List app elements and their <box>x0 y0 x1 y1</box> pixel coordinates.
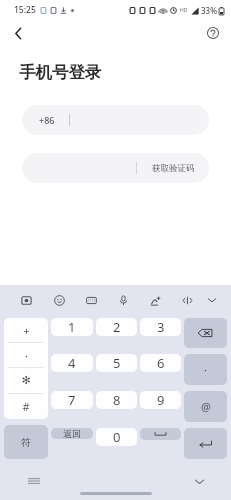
staticText: 2 <box>113 318 121 336</box>
staticText: 5 <box>113 354 121 372</box>
staticText: 8 <box>113 391 121 409</box>
button[interactable]: +86 <box>22 105 209 135</box>
button[interactable]: # <box>4 394 48 419</box>
button[interactable]: Handwriting <box>139 285 171 315</box>
button[interactable]: 6 <box>140 354 181 372</box>
button[interactable]: Hide keyboard <box>203 285 221 315</box>
staticText: # <box>22 399 30 414</box>
button[interactable]: 4 <box>51 354 93 372</box>
button[interactable]: Keyboard <box>75 285 107 315</box>
button[interactable]: ✻ <box>4 368 48 393</box>
staticText: 符 <box>21 436 31 449</box>
button[interactable]: 1 <box>51 318 93 336</box>
staticText: 3 <box>157 318 165 336</box>
button[interactable]: Input method <box>10 285 43 315</box>
staticText: +86 <box>39 114 55 126</box>
button[interactable]: 3 <box>140 318 181 336</box>
button[interactable]: Switch keyboard <box>24 471 44 491</box>
button[interactable]: Voice input <box>107 285 139 315</box>
staticText: 33% <box>201 5 217 16</box>
staticText: HD <box>180 7 188 14</box>
button[interactable]: @ <box>184 391 227 422</box>
staticText: 15:25 <box>14 4 36 16</box>
button[interactable]: 5 <box>96 354 137 372</box>
button[interactable]: Enter <box>184 428 227 459</box>
button[interactable]: 符 <box>4 425 48 459</box>
staticText: 4 <box>68 354 76 372</box>
staticText: @ <box>201 399 211 414</box>
staticText: 9 <box>157 391 165 409</box>
button[interactable]: 7 <box>51 391 93 409</box>
staticText: + <box>23 323 30 338</box>
button[interactable]: Delete <box>184 318 227 348</box>
button[interactable]: 返回 <box>51 428 93 439</box>
staticText: 获取验证码 <box>152 163 195 174</box>
staticText: 6 <box>157 354 165 372</box>
staticText: 1 <box>68 318 76 336</box>
button[interactable]: Help <box>201 21 225 45</box>
button[interactable]: 9 <box>140 391 181 409</box>
button[interactable]: 获取验证码 <box>137 153 209 183</box>
button[interactable]: Back <box>5 20 31 46</box>
button[interactable]: · <box>4 343 48 367</box>
staticText: 手机号登录 <box>19 62 102 83</box>
button[interactable]: Collapse keyboard <box>189 471 209 491</box>
button[interactable]: + <box>4 318 48 342</box>
staticText: · <box>25 348 28 363</box>
staticText: ✻ <box>21 374 31 387</box>
staticText: 0 <box>113 428 121 446</box>
button[interactable]: · <box>184 354 227 385</box>
button[interactable]: 2 <box>96 318 137 336</box>
button[interactable]: Space <box>140 428 181 440</box>
staticText: 返回 <box>63 428 81 439</box>
button[interactable]: 8 <box>96 391 137 409</box>
staticText: 7 <box>68 391 76 409</box>
staticText: · <box>204 362 207 377</box>
button[interactable]: Cursor <box>171 285 203 315</box>
button[interactable]: 0 <box>96 428 137 446</box>
button[interactable]: Emoji <box>43 285 75 315</box>
